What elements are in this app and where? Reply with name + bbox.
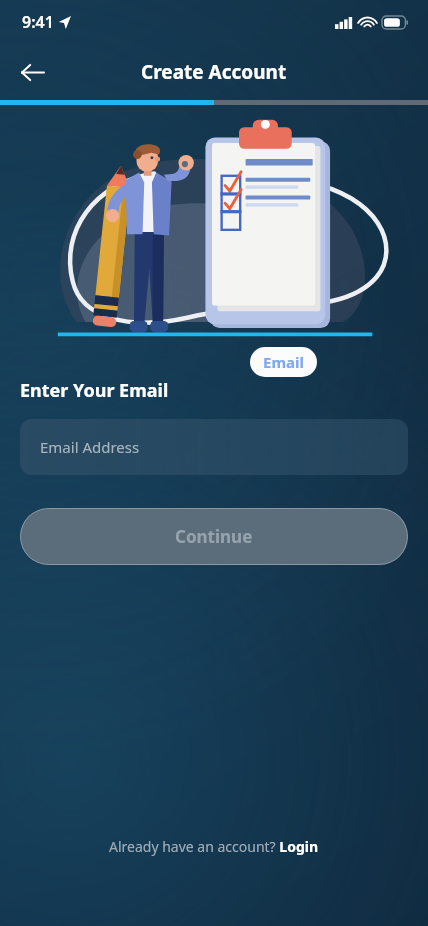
button[interactable]: Back <box>10 50 54 94</box>
staticText: Already have an account? Login <box>109 837 319 856</box>
button[interactable]: Already have an account? Login <box>0 829 428 864</box>
staticText: Email Address <box>40 437 140 457</box>
staticText: Email <box>263 352 304 372</box>
staticText: 9:41 <box>22 11 54 33</box>
button[interactable]: Continue <box>20 508 408 565</box>
staticText: Create Account <box>141 59 287 85</box>
button[interactable]: Email Address <box>20 419 408 475</box>
staticText: Enter Your Email <box>20 378 169 403</box>
staticText: Continue <box>175 525 253 548</box>
